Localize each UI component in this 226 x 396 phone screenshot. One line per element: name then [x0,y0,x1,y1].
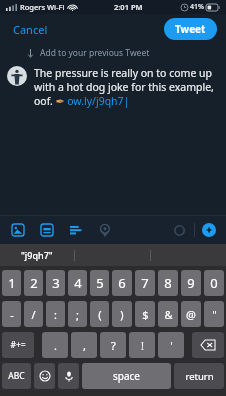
staticText: #+= [10,339,26,351]
staticText: 2 [30,274,38,292]
button[interactable]: / [24,301,43,327]
staticText: 5 [96,274,104,292]
button[interactable]: Add photo [10,222,26,238]
staticText: The pressure is really on to come up wit… [34,66,218,108]
staticText: Cancel [13,22,48,37]
staticText: 9 [187,274,195,292]
staticText: ! [141,338,144,353]
staticText: ' [170,338,173,353]
button[interactable]: 3 [46,270,65,296]
staticText: & [164,307,173,322]
button[interactable]: , [71,332,97,358]
staticText: 0 [210,274,218,292]
staticText: return [185,370,214,383]
button[interactable]: 4 [68,270,87,296]
staticText: ( [98,307,102,322]
button[interactable]: $ [135,301,155,327]
button[interactable]: 7 [135,270,155,296]
button[interactable]: "j9qh7" [0,244,74,266]
button[interactable]: ' [158,332,184,358]
staticText: Rogers Wi-Fi [20,2,65,12]
button[interactable]: Add to your previous Tweet [0,44,226,62]
staticText: , [83,338,86,353]
button[interactable]: 5 [90,270,109,296]
staticText: ABC [8,370,25,382]
staticText: / [31,307,36,322]
staticText: 7 [141,274,149,292]
button[interactable]: - [2,301,21,327]
button[interactable]: 9 [181,270,201,296]
staticText: Tweet [175,22,206,36]
button[interactable]: #+= [2,332,34,358]
staticText: ; [76,307,79,322]
button[interactable]: : [46,301,65,327]
button[interactable]: " [204,301,224,327]
button[interactable]: @ [181,301,201,327]
button[interactable]: Character count [171,222,187,238]
button[interactable]: Dictation [58,363,79,389]
staticText: " [212,307,217,322]
button[interactable]: ( [90,301,109,327]
button[interactable]: 6 [112,270,132,296]
button[interactable]: Cancel [4,17,57,42]
staticText: ) [120,307,124,322]
staticText: 6 [118,274,126,292]
staticText: 2:01 PM [114,2,143,12]
staticText: @ [186,307,196,322]
button[interactable]: Poll [68,222,84,238]
button[interactable]: Add GIF [39,222,55,238]
staticText: $ [142,307,149,322]
button[interactable]: ABC [2,363,31,389]
staticText: Add to your previous Tweet [40,47,150,59]
button[interactable]: Profile photo [7,66,27,86]
staticText: "j9qh7" [21,249,53,261]
staticText: . [54,338,57,353]
button[interactable]: 1 [2,270,21,296]
button[interactable]: space [82,363,171,389]
staticText: 1 [8,274,16,292]
button[interactable]: Delete [192,332,224,358]
button[interactable]: ! [129,332,155,358]
staticText: 8 [164,274,172,292]
staticText: 41% [190,2,204,12]
button[interactable]: Emoji [34,363,55,389]
button[interactable]: Location [97,222,113,238]
staticText: 3 [52,274,60,292]
button[interactable]: 0 [204,270,224,296]
button[interactable]: ; [68,301,87,327]
staticText: ? [111,338,116,353]
button[interactable]: Tweet [164,18,217,40]
button[interactable]: ) [112,301,132,327]
button[interactable]: Add another Tweet [202,223,216,237]
staticText: : [54,307,57,322]
button[interactable]: return [174,363,224,389]
staticText: space [113,369,140,383]
staticText: 4 [74,274,82,292]
button[interactable]: . [42,332,68,358]
button[interactable]: 2 [24,270,43,296]
button[interactable]: ? [100,332,126,358]
button[interactable]: 8 [158,270,178,296]
button[interactable]: & [158,301,178,327]
staticText: - [10,307,14,322]
